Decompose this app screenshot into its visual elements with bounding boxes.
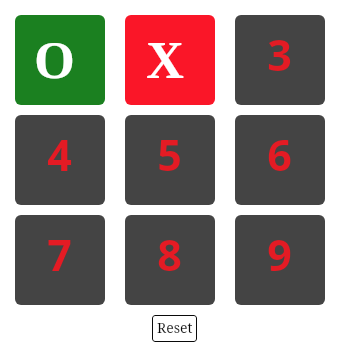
button[interactable]: 9 [235,215,325,305]
staticText: 8 [157,225,182,284]
staticText: 6 [267,125,292,184]
button[interactable]: 7 [15,215,105,305]
staticText: 5 [157,125,182,184]
staticText: X [146,32,184,90]
button[interactable]: O [15,15,105,105]
button[interactable]: X [125,15,215,105]
button[interactable]: 8 [125,215,215,305]
staticText: O [34,32,75,90]
staticText: 7 [47,225,72,284]
button[interactable]: 4 [15,115,105,205]
button[interactable]: 6 [235,115,325,205]
staticText: 3 [267,25,292,84]
button[interactable]: 3 [235,15,325,105]
staticText: 9 [267,225,292,284]
staticText: Reset [157,318,193,337]
button[interactable]: 5 [125,115,215,205]
staticText: 4 [47,125,72,184]
button[interactable]: Reset [152,315,197,342]
